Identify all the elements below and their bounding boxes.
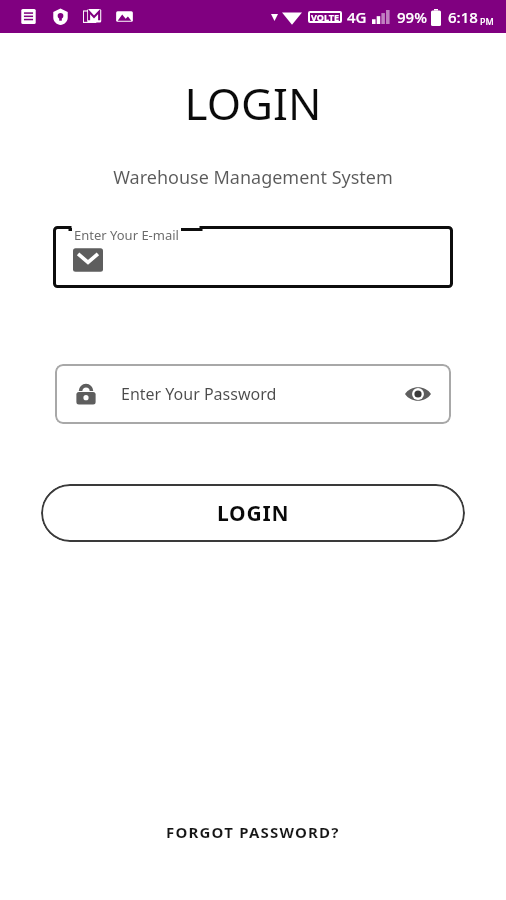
button[interactable]: Enter Your E-mail	[53, 226, 453, 288]
staticText: VOLTE	[311, 11, 339, 23]
staticText: Enter Your E-mail	[74, 226, 179, 244]
staticText: Warehouse Management System	[0, 165, 506, 190]
staticText: PM	[480, 15, 494, 27]
staticText: LOGIN	[0, 73, 506, 133]
button[interactable]: Password	[55, 364, 451, 424]
button[interactable]: FORGOT PASSWORD?	[152, 814, 354, 850]
other: Email	[73, 245, 103, 275]
staticText: 4G	[347, 7, 367, 27]
staticText: 99%	[397, 7, 427, 27]
other: Password	[73, 381, 99, 407]
button[interactable]: Show password	[403, 379, 433, 409]
staticText: LOGIN	[217, 499, 290, 528]
button[interactable]: LOGIN	[41, 484, 465, 542]
staticText: FORGOT PASSWORD?	[166, 822, 340, 842]
staticText: 6:18	[448, 7, 478, 27]
staticText: Enter Your Password	[121, 383, 403, 405]
